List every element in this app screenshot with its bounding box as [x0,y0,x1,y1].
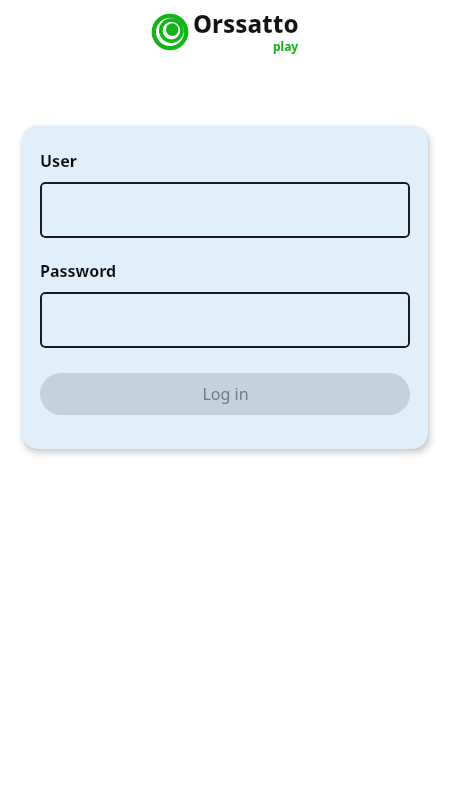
button[interactable]: Orssatto play [0,7,450,56]
staticText: Log in [202,383,249,405]
staticText: Orssatto [193,7,299,40]
staticText: play [273,38,299,54]
button[interactable]: Log in [40,373,410,415]
staticText: User [40,150,77,172]
staticText: Password [40,260,117,282]
button[interactable]: Password input field [40,292,410,348]
button[interactable]: User input field [40,182,410,238]
